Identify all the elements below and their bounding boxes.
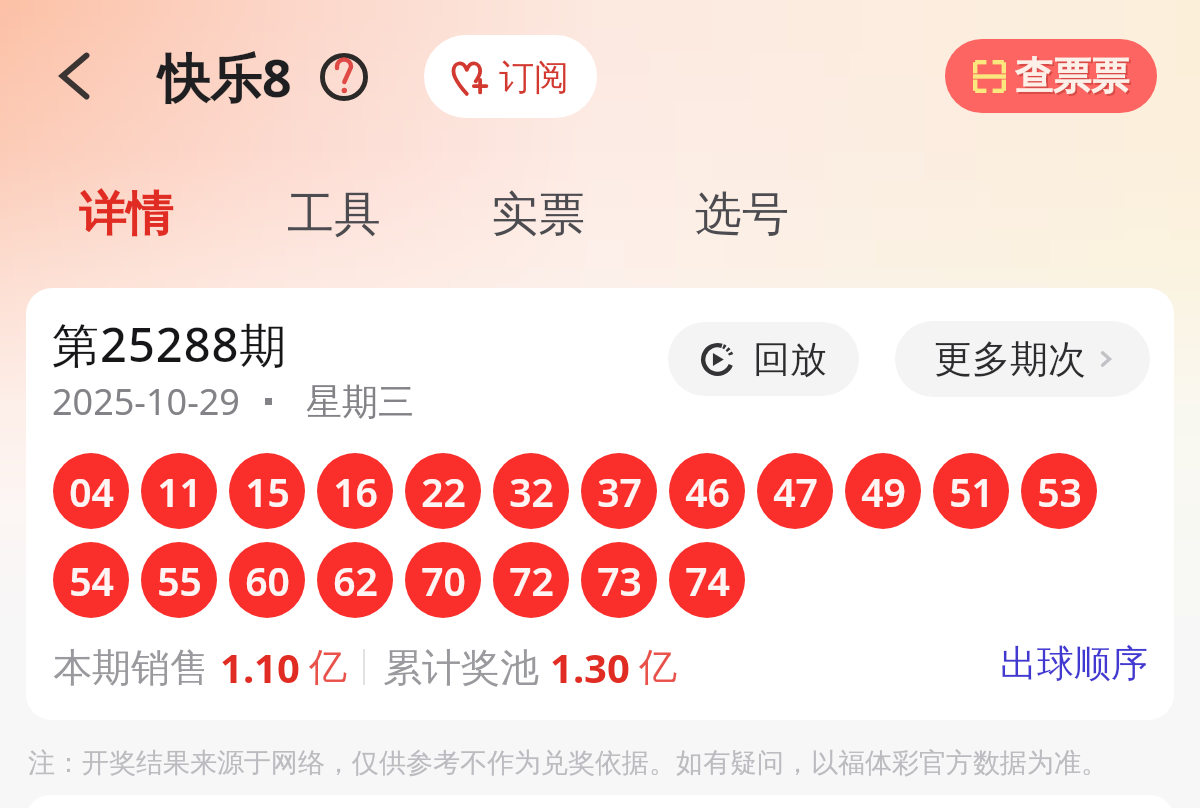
staticText: 53 <box>1037 465 1082 518</box>
staticText: 04 <box>69 465 114 518</box>
staticText: 本期销售 <box>53 643 209 692</box>
staticText: 46 <box>685 465 730 518</box>
staticText: 更多期次 <box>934 335 1086 383</box>
staticText: 74 <box>685 554 730 607</box>
button[interactable]: 工具 <box>270 166 398 262</box>
staticText: 11 <box>157 465 202 518</box>
staticText: 72 <box>509 554 554 607</box>
button[interactable]: Back <box>52 53 98 99</box>
staticText: 37 <box>597 465 642 518</box>
staticText: 47 <box>773 465 818 518</box>
button[interactable]: 更多期次 <box>895 321 1150 397</box>
staticText: 查票票 <box>1015 52 1129 100</box>
button[interactable]: 出球顺序 <box>1000 640 1148 687</box>
staticText: 实票 <box>491 185 585 244</box>
staticText: 工具 <box>287 185 381 244</box>
staticText: 51 <box>949 465 994 518</box>
staticText: 62 <box>333 554 378 607</box>
staticText: 70 <box>421 554 466 607</box>
button[interactable]: Help <box>320 53 368 101</box>
staticText: 55 <box>157 554 202 607</box>
staticText: 15 <box>245 465 290 518</box>
button[interactable]: 查票票 <box>945 39 1157 113</box>
button[interactable]: 详情 <box>62 166 190 262</box>
staticText: 60 <box>245 554 290 607</box>
staticText: 1.30 <box>550 640 630 694</box>
staticText: 详情 <box>79 185 173 244</box>
button[interactable]: 回放 <box>668 322 859 396</box>
staticText: 2025-10-29 <box>52 377 240 426</box>
staticText: 选号 <box>695 185 789 244</box>
staticText: 49 <box>861 465 906 518</box>
staticText: 73 <box>597 554 642 607</box>
staticText: 出球顺序 <box>1000 640 1148 687</box>
staticText: 快乐8 <box>158 41 292 112</box>
staticText: 查票票 <box>1017 54 1131 102</box>
button[interactable]: 实票 <box>474 166 602 262</box>
staticText: 亿 <box>309 643 347 691</box>
staticText: 54 <box>69 554 114 607</box>
staticText: 16 <box>333 465 378 518</box>
staticText: 32 <box>509 465 554 518</box>
button[interactable]: 选号 <box>678 166 806 262</box>
staticText: 亿 <box>639 643 677 691</box>
staticText: 22 <box>421 465 466 518</box>
staticText: 订阅 <box>499 55 569 99</box>
staticText: 注：开奖结果来源于网络，仅供参考不作为兑奖依据。如有疑问，以福体彩官方数据为准。 <box>28 746 1108 780</box>
staticText: 回放 <box>753 336 827 383</box>
staticText: 第25288期 <box>52 312 288 376</box>
button[interactable]: 订阅 <box>424 35 597 118</box>
staticText: 1.10 <box>220 640 300 694</box>
staticText: 星期三 <box>306 379 414 424</box>
staticText: 累计奖池 <box>383 643 539 692</box>
